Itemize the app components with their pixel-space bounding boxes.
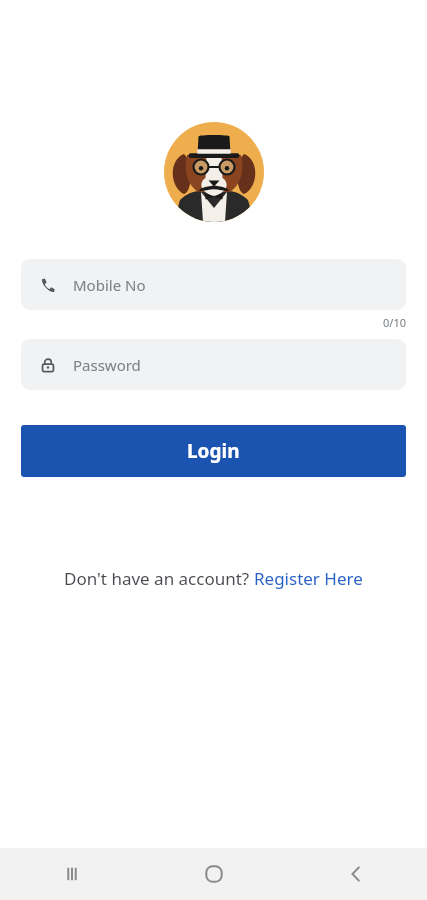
button[interactable]: Login	[21, 425, 406, 477]
button[interactable]: Mobile No	[21, 259, 406, 310]
staticText: Mobile No	[73, 275, 146, 295]
staticText: Don't have an account?	[64, 567, 254, 590]
staticText: 0/10	[383, 315, 406, 330]
button[interactable]: Back	[285, 848, 427, 900]
button[interactable]: Home	[143, 848, 285, 900]
staticText: Register Here	[254, 567, 363, 590]
staticText: Password	[73, 355, 141, 375]
button[interactable]: Recents	[0, 848, 143, 900]
button[interactable]: Password	[21, 339, 406, 390]
staticText: Login	[187, 438, 240, 464]
button[interactable]: Register Here	[254, 567, 363, 590]
